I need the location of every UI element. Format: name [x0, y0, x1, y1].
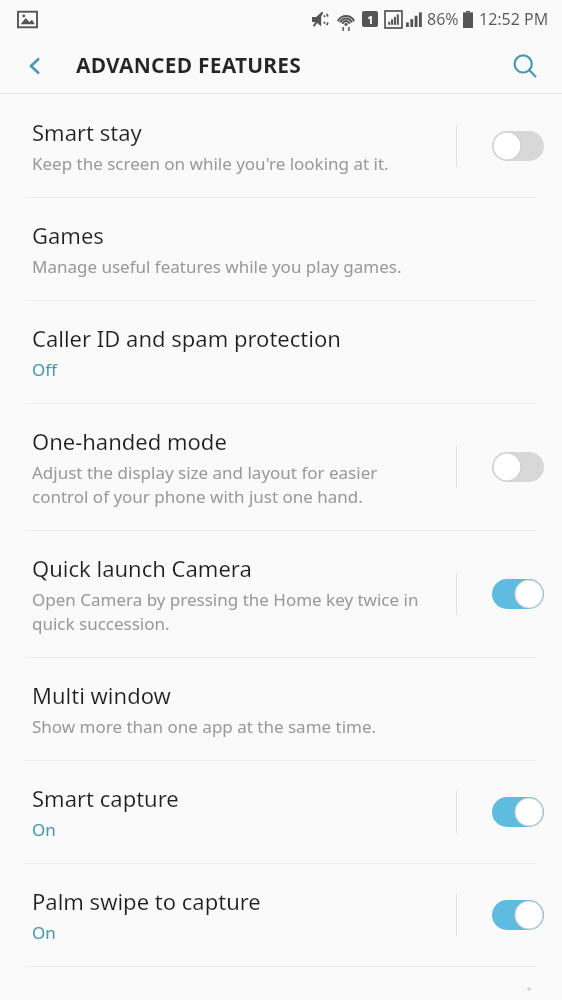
staticText: Keep the screen on while you're looking … [32, 152, 389, 175]
staticText: Show more than one app at the same time. [32, 715, 377, 738]
button[interactable]: Palm swipe to capture [0, 864, 562, 966]
staticText: On [32, 818, 56, 841]
button[interactable]: One-handed mode switch [455, 438, 562, 496]
staticText: Palm swipe to capture [32, 886, 261, 916]
button[interactable]: Smart capture switch [455, 783, 562, 841]
button[interactable]: One-handed mode [0, 404, 562, 530]
staticText: Off [32, 358, 57, 381]
button[interactable]: Quick launch Camera [0, 531, 562, 657]
button[interactable]: Smart capture [0, 761, 562, 863]
button[interactable]: Palm swipe to capture switch [455, 886, 562, 944]
staticText: Quick launch Camera [32, 553, 252, 583]
button[interactable]: Search [502, 43, 548, 89]
staticText: Multi window [32, 680, 171, 710]
staticText: Caller ID and spam protection [32, 323, 341, 353]
button[interactable]: Multi window [0, 658, 562, 760]
staticText: Open Camera by pressing the Home key twi… [32, 588, 419, 635]
staticText: Adjust the display size and layout for e… [32, 461, 378, 508]
button[interactable]: Back [12, 43, 58, 89]
staticText: On [32, 921, 56, 944]
staticText: Games [32, 220, 104, 250]
button[interactable]: Quick launch Camera switch [455, 565, 562, 623]
staticText: Manage useful features while you play ga… [32, 255, 402, 278]
button[interactable]: Smart stay [0, 94, 562, 197]
button[interactable]: Caller ID and spam protection [0, 301, 562, 403]
staticText: 1 [367, 12, 374, 27]
staticText: One-handed mode [32, 426, 227, 456]
staticText: Smart stay [32, 117, 142, 147]
button[interactable]: Smart stay switch [455, 117, 562, 175]
staticText: Smart capture [32, 783, 179, 813]
staticText: 12:52 PM [479, 8, 549, 30]
staticText: 86% [427, 8, 459, 30]
button[interactable]: Games [0, 198, 562, 300]
staticText: ADVANCED FEATURES [76, 51, 302, 80]
